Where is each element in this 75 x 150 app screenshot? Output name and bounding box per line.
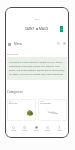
- button[interactable]: NEW: [38, 99, 67, 121]
- staticText: 9:41: [35, 17, 40, 20]
- staticText: MAUX: [39, 27, 49, 31]
- staticText: SAINT: [25, 27, 35, 31]
- button[interactable]: Home: [8, 125, 18, 131]
- staticText: The whole supermarket is Bring to You. F…: [9, 60, 65, 77]
- button[interactable]: Scan: [31, 125, 41, 131]
- staticText: Menu: [14, 42, 23, 46]
- button[interactable]: NEW: [7, 99, 36, 121]
- button[interactable]: Shop: [19, 125, 29, 131]
- staticText: Categories: [7, 90, 23, 94]
- staticText: Ella Diane: [7, 52, 19, 55]
- staticText: Broccoli: [9, 102, 18, 105]
- button[interactable]: Profile: [54, 125, 64, 131]
- staticText: NEW: [40, 100, 45, 102]
- staticText: NEW: [9, 100, 14, 102]
- staticText: Sea Bream: [40, 102, 52, 105]
- button[interactable]: Cart: [60, 26, 63, 32]
- button[interactable]: Menu: [7, 41, 24, 47]
- button[interactable]: Saved: [42, 125, 52, 131]
- button[interactable]: Account: [62, 41, 67, 46]
- button[interactable]: Search: [56, 41, 61, 46]
